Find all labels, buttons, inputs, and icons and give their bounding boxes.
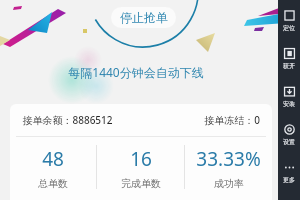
button[interactable]: 获开: [278, 39, 300, 77]
staticText: 33.33%: [196, 146, 261, 172]
staticText: 每隔1440分钟会自动下线: [68, 64, 204, 80]
button[interactable]: 16: [97, 137, 184, 200]
staticText: 16: [130, 146, 152, 172]
staticText: 接单余额：8886512: [22, 113, 113, 127]
staticText: 48: [42, 146, 64, 172]
staticText: 完成单数: [121, 177, 161, 190]
button[interactable]: 设置: [278, 115, 300, 153]
staticText: 停止抢单: [120, 10, 168, 25]
button[interactable]: 48: [10, 137, 96, 200]
button[interactable]: 更多: [278, 153, 300, 191]
staticText: 安装: [283, 100, 295, 108]
button[interactable]: 定位: [278, 1, 300, 39]
staticText: 成功率: [214, 177, 244, 190]
staticText: 设置: [283, 138, 295, 146]
staticText: 总单数: [38, 177, 68, 190]
staticText: 获开: [283, 62, 295, 70]
button[interactable]: 停止抢单: [111, 7, 176, 28]
button[interactable]: 33.33%: [185, 137, 272, 200]
staticText: 接单冻结：0: [204, 113, 260, 127]
button[interactable]: 安装: [278, 77, 300, 115]
staticText: 更多: [283, 176, 295, 184]
staticText: 定位: [283, 24, 295, 32]
